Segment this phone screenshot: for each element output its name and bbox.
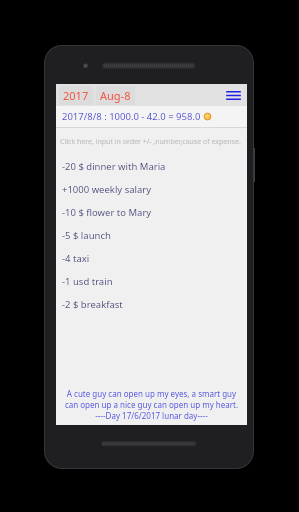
- staticText: -1 usd train: [62, 275, 113, 288]
- staticText: Aug-8: [100, 88, 131, 103]
- button[interactable]: -10 $ flower to Mary: [56, 201, 247, 224]
- staticText: -4 taxi: [62, 252, 90, 265]
- button[interactable]: -2 $ breakfast: [56, 293, 247, 316]
- staticText: 2017/8/8 : 1000.0 - 42.0 = 958.0: [62, 110, 201, 123]
- staticText: -20 $ dinner with Maria: [62, 160, 166, 173]
- staticText: Click here, input in order +/- ,number,c…: [60, 137, 247, 147]
- staticText: -5 $ launch: [62, 229, 111, 242]
- button[interactable]: +1000 weekly salary: [56, 178, 247, 201]
- button[interactable]: 2017: [59, 86, 93, 105]
- staticText: -2 $ breakfast: [62, 298, 123, 311]
- button[interactable]: A cute guy can open up my eyes, a smart …: [56, 388, 247, 421]
- button[interactable]: -1 usd train: [56, 270, 247, 293]
- button[interactable]: Click here, input in order +/- ,number,c…: [56, 135, 247, 149]
- staticText: 2017: [63, 88, 89, 103]
- staticText: +1000 weekly salary: [62, 183, 152, 196]
- staticText: A cute guy can open up my eyes, a smart …: [62, 388, 241, 421]
- button[interactable]: -4 taxi: [56, 247, 247, 270]
- button[interactable]: Aug-8: [96, 86, 135, 105]
- button[interactable]: Menu: [224, 86, 242, 104]
- staticText: -10 $ flower to Mary: [62, 206, 152, 219]
- button[interactable]: -20 $ dinner with Maria: [56, 155, 247, 178]
- button[interactable]: -5 $ launch: [56, 224, 247, 247]
- button[interactable]: 2017/8/8 : 1000.0 - 42.0 = 958.0: [56, 106, 247, 127]
